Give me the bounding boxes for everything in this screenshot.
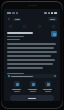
button[interactable]: Back xyxy=(7,17,11,21)
button[interactable]: Action xyxy=(48,17,57,21)
button[interactable]: Tool 2 xyxy=(37,24,42,29)
button[interactable]: Input field xyxy=(7,74,57,78)
button[interactable]: Title xyxy=(13,18,21,21)
button[interactable]: Tool 3 xyxy=(51,24,56,29)
button[interactable]: Action 2 xyxy=(27,81,38,92)
button[interactable]: Tool 1 xyxy=(22,24,27,29)
button[interactable]: Action 1 xyxy=(11,81,22,92)
button[interactable]: Tool 0 xyxy=(8,24,13,29)
button[interactable]: Open xyxy=(51,31,57,37)
button[interactable]: Action 3 xyxy=(42,81,53,92)
button[interactable]: Primary action xyxy=(10,95,54,101)
